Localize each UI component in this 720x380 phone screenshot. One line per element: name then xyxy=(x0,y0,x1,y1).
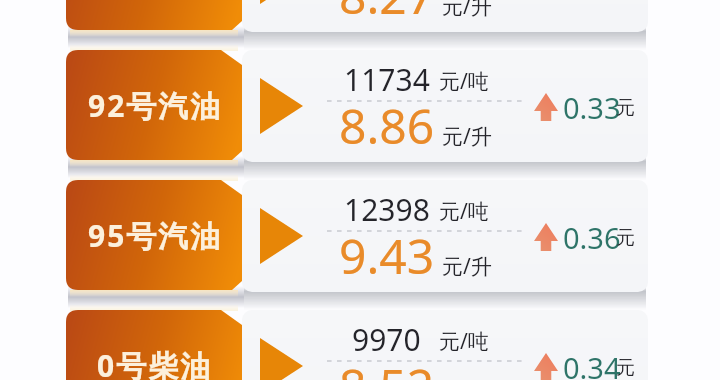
other: Price increase xyxy=(534,353,558,380)
staticText: 元/吨 xyxy=(439,197,489,226)
button[interactable] xyxy=(242,310,648,380)
other: Price increase xyxy=(534,223,558,251)
staticText: 9.43 xyxy=(339,223,435,288)
staticText: 元 xyxy=(616,356,635,380)
staticText: 95号汽油 xyxy=(88,215,223,256)
staticText: 8.52 xyxy=(339,353,435,380)
button[interactable] xyxy=(242,50,648,162)
staticText: 元/升 xyxy=(442,122,492,151)
staticText: 元/升 xyxy=(442,0,492,21)
staticText: 0号柴油 xyxy=(97,345,213,380)
staticText: 0.34 xyxy=(563,348,621,380)
other: Price increase xyxy=(534,93,558,121)
button[interactable] xyxy=(242,0,648,32)
staticText: 8.27 xyxy=(339,0,435,28)
button[interactable] xyxy=(242,180,648,292)
button[interactable]: 0号柴油 xyxy=(66,310,242,380)
staticText: 9970 xyxy=(352,319,421,360)
button[interactable]: 92号汽油 xyxy=(66,50,242,160)
staticText: 0.36 xyxy=(563,218,621,257)
button[interactable]: 89号汽油 xyxy=(66,0,242,30)
button[interactable]: 95号汽油 xyxy=(66,180,242,290)
staticText: 元/升 xyxy=(442,252,492,281)
staticText: 元/吨 xyxy=(439,327,489,356)
staticText: 11734 xyxy=(344,59,430,100)
staticText: 8.86 xyxy=(339,93,435,158)
staticText: 元 xyxy=(616,226,635,250)
staticText: 0.33 xyxy=(563,88,621,127)
staticText: 元 xyxy=(616,96,635,120)
staticText: 元/吨 xyxy=(439,67,489,96)
staticText: 92号汽油 xyxy=(88,85,223,126)
staticText: 12398 xyxy=(344,189,430,230)
